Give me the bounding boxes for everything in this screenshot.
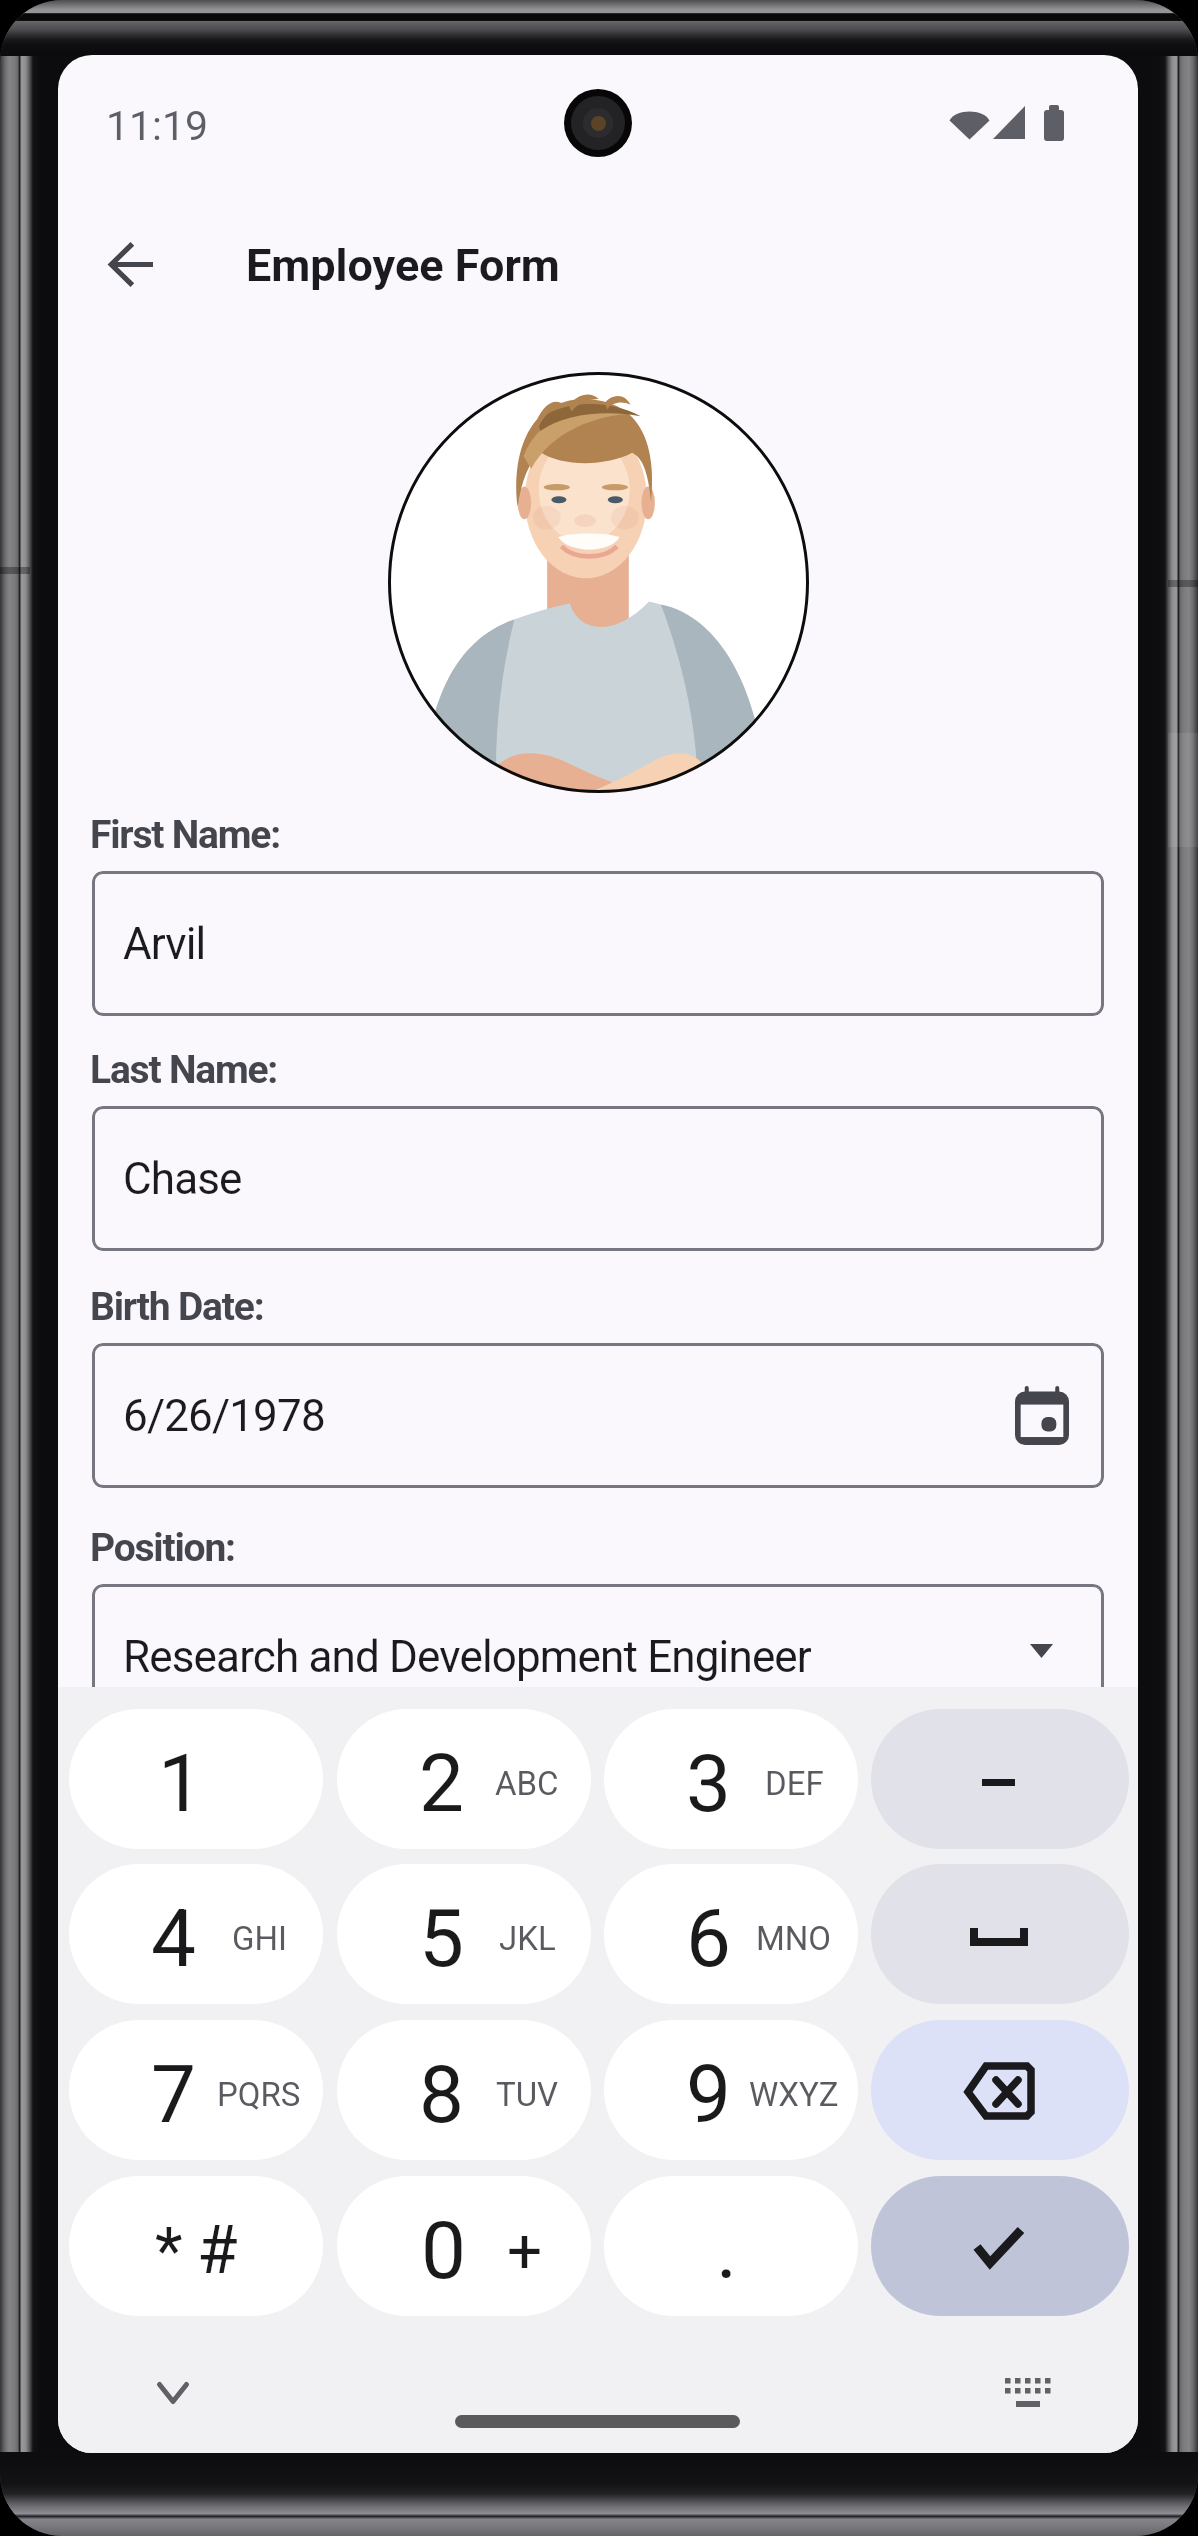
- staticText: DEF: [765, 1764, 824, 1803]
- staticText: Employee Form: [246, 239, 560, 292]
- staticText: MNO: [756, 1919, 832, 1958]
- staticText: *: [155, 2214, 183, 2289]
- staticText: .: [716, 2204, 738, 2298]
- staticText: WXYZ: [749, 2075, 839, 2114]
- staticText: Chase: [123, 1153, 242, 1205]
- button[interactable]: Enter: [871, 2176, 1129, 2316]
- button[interactable]: 7: [69, 2020, 323, 2160]
- staticText: 2: [419, 1737, 464, 1831]
- button[interactable]: Minus: [871, 1709, 1129, 1849]
- staticText: TUV: [496, 2075, 559, 2114]
- staticText: Last Name:: [90, 1047, 278, 1093]
- staticText: PQRS: [217, 2075, 301, 2114]
- button[interactable]: Arvil: [92, 871, 1104, 1016]
- button[interactable]: Switch keyboard: [992, 2357, 1064, 2429]
- button[interactable]: 0: [337, 2176, 591, 2316]
- button[interactable]: 9: [604, 2020, 858, 2160]
- staticText: First Name:: [90, 812, 280, 858]
- staticText: 4: [151, 1892, 196, 1986]
- staticText: 0: [421, 2204, 466, 2298]
- button[interactable]: Chase: [92, 1106, 1104, 1251]
- button[interactable]: 3: [604, 1709, 858, 1849]
- staticText: Research and Development Engineer: [123, 1631, 811, 1683]
- button[interactable]: 5: [337, 1864, 591, 2004]
- staticText: Position:: [90, 1525, 235, 1571]
- button[interactable]: 8: [337, 2020, 591, 2160]
- staticText: 11:19: [106, 102, 209, 150]
- button[interactable]: Research and Development Engineer: [92, 1584, 1104, 1729]
- staticText: 5: [419, 1892, 464, 1986]
- button[interactable]: Back: [86, 219, 176, 309]
- button[interactable]: 2: [337, 1709, 591, 1849]
- staticText: +: [507, 2214, 543, 2287]
- button[interactable]: Hide keyboard: [137, 2357, 209, 2429]
- button[interactable]: 4: [69, 1864, 323, 2004]
- staticText: 9: [686, 2048, 731, 2142]
- button[interactable]: 6/26/1978: [92, 1343, 1104, 1488]
- staticText: JKL: [499, 1919, 556, 1958]
- button[interactable]: Backspace: [871, 2020, 1129, 2160]
- button[interactable]: 1: [69, 1709, 323, 1849]
- staticText: 8: [419, 2048, 464, 2142]
- staticText: Birth Date:: [90, 1284, 264, 1330]
- button[interactable]: 6: [604, 1864, 858, 2004]
- staticText: ABC: [495, 1764, 559, 1803]
- button[interactable]: .: [604, 2176, 858, 2316]
- button[interactable]: Space: [871, 1864, 1129, 2004]
- staticText: 6/26/1978: [123, 1390, 325, 1442]
- staticText: GHI: [232, 1919, 287, 1958]
- staticText: 7: [151, 2048, 196, 2142]
- staticText: 1: [158, 1737, 203, 1831]
- staticText: Arvil: [123, 918, 206, 970]
- staticText: 6: [686, 1892, 731, 1986]
- staticText: 3: [686, 1737, 731, 1831]
- button[interactable]: *: [69, 2176, 323, 2316]
- staticText: #: [197, 2212, 238, 2289]
